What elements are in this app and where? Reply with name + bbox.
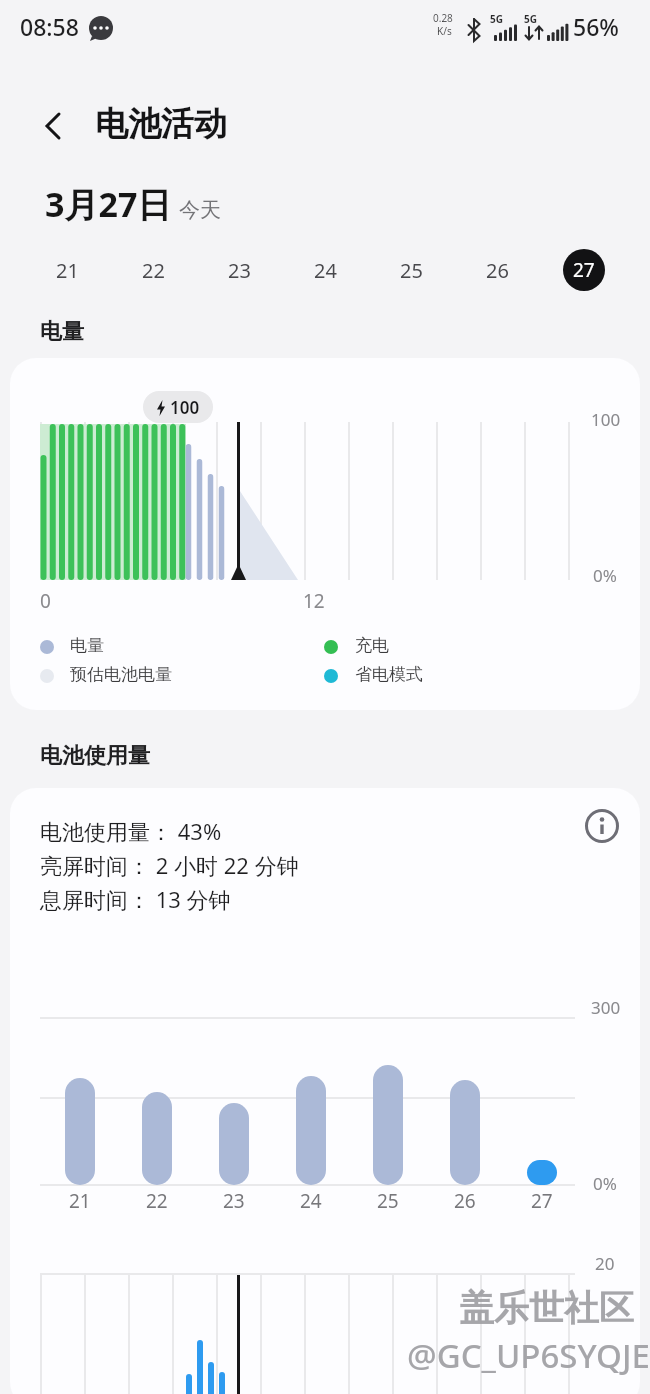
staticText: 27 bbox=[573, 257, 595, 283]
button[interactable] bbox=[580, 804, 624, 848]
staticText: 电量 bbox=[70, 635, 104, 656]
staticText: 亮屏时间： 2 小时 22 分钟 bbox=[40, 850, 299, 880]
staticText: 20 bbox=[595, 1252, 615, 1275]
staticText: 12 bbox=[303, 588, 325, 614]
staticText: 电池活动 bbox=[95, 103, 227, 145]
staticText: 息屏时间： 13 分钟 bbox=[40, 884, 231, 914]
button[interactable]: 24 bbox=[282, 248, 368, 292]
staticText: 21 bbox=[69, 1188, 91, 1214]
button[interactable]: 23 bbox=[196, 248, 282, 292]
staticText: 26 bbox=[454, 1188, 476, 1214]
staticText: 26 bbox=[486, 257, 509, 284]
staticText: 0% bbox=[593, 1172, 617, 1195]
staticText: 300 bbox=[591, 996, 621, 1019]
staticText: 电池使用量： 43% bbox=[40, 816, 222, 846]
staticText: 5G bbox=[524, 12, 537, 26]
button[interactable]: 26 bbox=[454, 248, 540, 292]
staticText: @GC_UP6SYQJE bbox=[407, 1333, 650, 1378]
staticText: 100 bbox=[170, 396, 200, 419]
button[interactable] bbox=[30, 102, 78, 150]
staticText: 24 bbox=[300, 1188, 322, 1214]
staticText: K/s bbox=[437, 24, 452, 38]
staticText: 23 bbox=[223, 1188, 245, 1214]
staticText: 预估电池电量 bbox=[70, 664, 172, 685]
staticText: 25 bbox=[377, 1188, 399, 1214]
staticText: 24 bbox=[314, 257, 337, 284]
staticText: 电量 bbox=[40, 318, 84, 346]
staticText: 省电模式 bbox=[355, 664, 423, 685]
button[interactable]: 27 bbox=[563, 249, 605, 291]
staticText: 08:58 bbox=[20, 11, 79, 42]
staticText: 0% bbox=[593, 564, 617, 587]
staticText: 23 bbox=[228, 257, 251, 284]
staticText: 充电 bbox=[355, 635, 389, 656]
staticText: 3月27日 bbox=[45, 181, 172, 227]
staticText: 0.28 bbox=[433, 11, 453, 25]
staticText: 25 bbox=[400, 257, 423, 284]
staticText: 电池使用量 bbox=[40, 742, 150, 770]
staticText: 27 bbox=[531, 1188, 553, 1214]
staticText: 5G bbox=[490, 12, 503, 26]
staticText: 56% bbox=[573, 11, 619, 42]
staticText: 22 bbox=[146, 1188, 168, 1214]
staticText: 100 bbox=[591, 408, 621, 431]
staticText: 0 bbox=[40, 588, 51, 614]
staticText: 盖乐世社区 bbox=[459, 1286, 634, 1330]
staticText: 22 bbox=[142, 257, 165, 284]
button[interactable]: 21 bbox=[24, 248, 110, 292]
button[interactable]: 25 bbox=[368, 248, 454, 292]
button[interactable]: 22 bbox=[110, 248, 196, 292]
staticText: 21 bbox=[56, 257, 79, 284]
staticText: 今天 bbox=[179, 197, 221, 223]
